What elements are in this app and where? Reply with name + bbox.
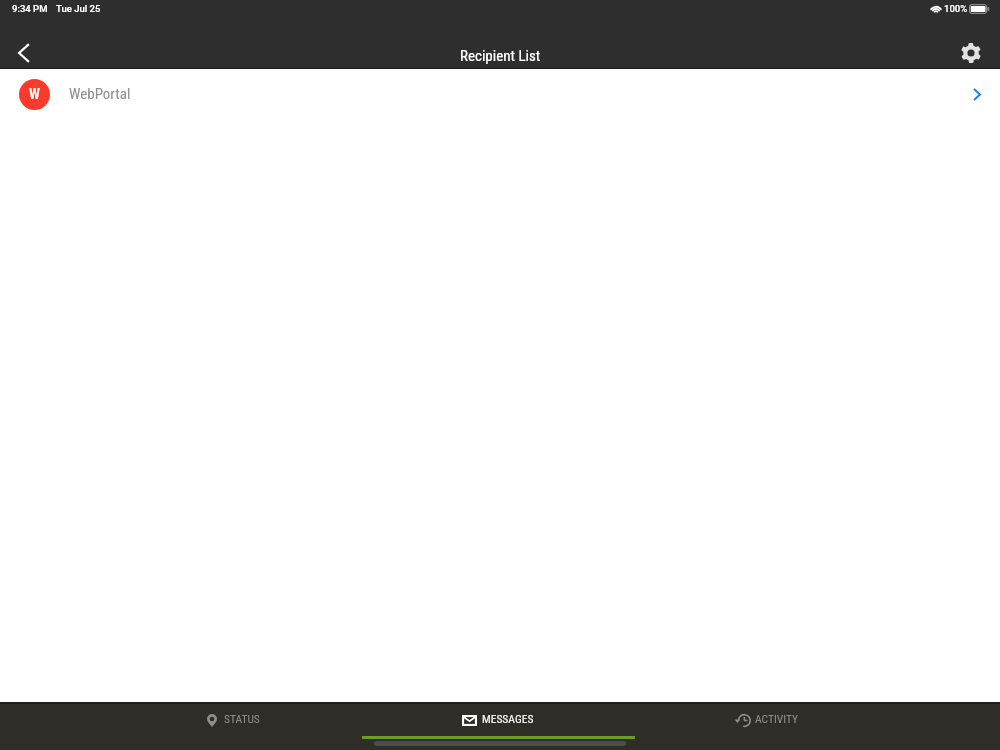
button[interactable]: Back: [2, 31, 46, 75]
staticText: W: [29, 86, 40, 103]
button[interactable]: ACTIVITY: [633, 702, 899, 750]
staticText: STATUS: [224, 712, 260, 725]
staticText: Recipient List: [460, 47, 541, 65]
staticText: 9:34 PM: [12, 3, 48, 14]
button[interactable]: Settings: [949, 31, 993, 75]
button[interactable]: MESSAGES: [367, 702, 633, 750]
button[interactable]: W: [0, 69, 1000, 120]
staticText: Tue Jul 25: [56, 3, 101, 14]
staticText: WebPortal: [69, 85, 131, 103]
staticText: 100%: [944, 3, 968, 14]
button[interactable]: STATUS: [101, 702, 367, 750]
staticText: ACTIVITY: [755, 712, 799, 725]
staticText: MESSAGES: [482, 712, 534, 725]
